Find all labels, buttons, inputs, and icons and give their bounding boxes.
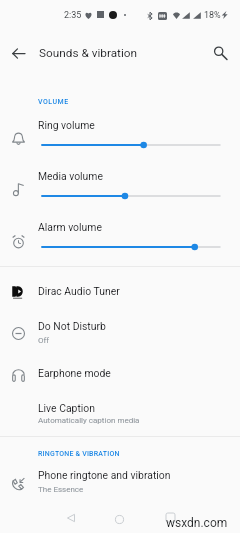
staticText: Dirac Audio Tuner <box>38 285 120 297</box>
button[interactable]: Alarm volume <box>0 209 240 257</box>
staticText: Alarm volume <box>38 221 102 233</box>
staticText: Do Not Disturb <box>38 320 106 332</box>
staticText: Phone ringtone and vibration <box>38 469 171 481</box>
button[interactable]: Back <box>6 34 31 72</box>
staticText: Ring volume <box>38 119 95 131</box>
staticText: VOLUME <box>38 98 69 106</box>
button[interactable]: Ring volume <box>0 107 240 155</box>
button[interactable]: Back <box>59 506 83 530</box>
staticText: The Essence <box>38 485 84 494</box>
button[interactable]: Phone ringtone and vibration <box>0 461 240 503</box>
button[interactable]: Dirac Audio Tuner <box>0 266 240 310</box>
button[interactable]: Media volume <box>0 158 240 206</box>
button[interactable]: Live Caption <box>0 391 240 435</box>
staticText: Automatically caption media <box>38 416 140 425</box>
staticText: wsxdn.com <box>166 516 228 530</box>
staticText: 18% <box>204 10 221 21</box>
button[interactable]: Earphone mode <box>0 357 240 403</box>
staticText: Earphone mode <box>38 367 111 379</box>
staticText: Live Caption <box>38 402 96 414</box>
button[interactable]: Recents <box>158 505 182 529</box>
staticText: Sounds & vibration <box>39 46 138 60</box>
button[interactable]: Do Not Disturb <box>0 310 240 357</box>
staticText: Off <box>38 336 50 345</box>
staticText: 2:35 <box>64 10 82 21</box>
staticText: Media volume <box>38 170 103 182</box>
button[interactable]: Search <box>207 34 234 72</box>
button[interactable]: Home <box>107 507 131 531</box>
staticText: RINGTONE & VIBRATION <box>38 450 120 458</box>
